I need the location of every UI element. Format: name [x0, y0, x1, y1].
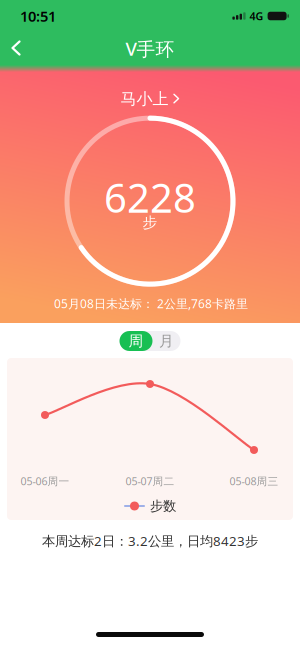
staticText: 月: [159, 332, 174, 350]
button[interactable]: 月: [152, 331, 180, 351]
staticText: 05-07周二: [125, 474, 174, 488]
staticText: 马小上: [120, 89, 168, 109]
staticText: 05月08日未达标： 2公里,768卡路里: [54, 296, 248, 312]
staticText: 10:51: [20, 6, 56, 26]
staticText: 步: [142, 214, 157, 232]
button[interactable]: 周: [119, 331, 152, 351]
staticText: 05-06周一: [20, 474, 69, 488]
staticText: 本周达标2日：3.2公里，日均8423步: [42, 532, 258, 550]
staticText: 6228: [104, 171, 196, 224]
button[interactable]: 马小上: [120, 89, 179, 109]
staticText: 步数: [150, 498, 176, 514]
button[interactable]: Back: [0, 32, 21, 65]
staticText: V手环: [125, 36, 174, 61]
staticText: 周: [128, 332, 143, 350]
staticText: 05-08周三: [229, 474, 278, 488]
staticText: 4G: [250, 9, 264, 23]
